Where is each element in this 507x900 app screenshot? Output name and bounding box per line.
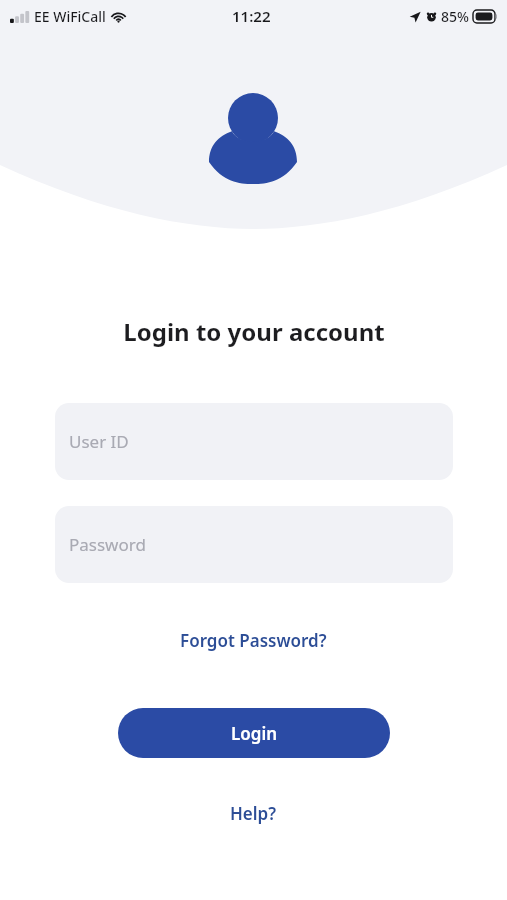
staticText: 11:22 bbox=[232, 6, 271, 26]
button[interactable]: User ID bbox=[55, 403, 453, 480]
staticText: Login to your account bbox=[123, 315, 385, 348]
staticText: Forgot Password? bbox=[180, 629, 327, 652]
button[interactable]: Forgot Password? bbox=[172, 625, 335, 656]
button[interactable]: Password bbox=[55, 506, 453, 583]
staticText: Login bbox=[231, 722, 278, 745]
staticText: 85% bbox=[441, 7, 469, 26]
staticText: Password bbox=[69, 533, 146, 556]
button[interactable]: Login bbox=[118, 708, 390, 758]
staticText: User ID bbox=[69, 430, 129, 453]
button[interactable]: Help? bbox=[220, 798, 287, 829]
staticText: EE WiFiCall bbox=[34, 7, 106, 26]
other: Profile avatar bbox=[203, 88, 303, 186]
staticText: Help? bbox=[230, 802, 277, 825]
